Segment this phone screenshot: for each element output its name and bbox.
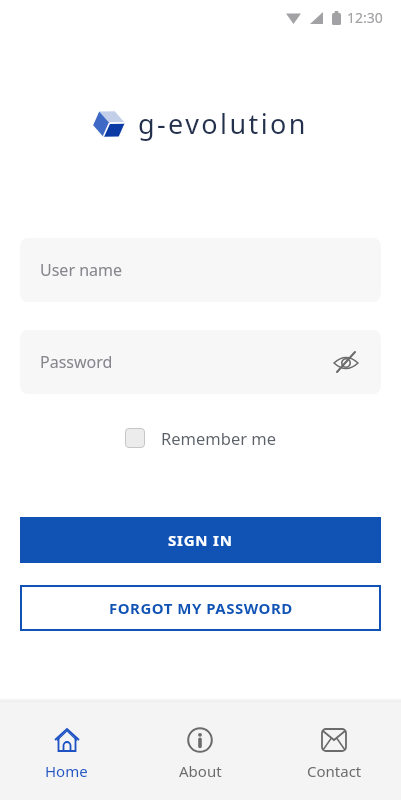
staticText: Contact	[307, 761, 362, 781]
staticText: About	[179, 761, 222, 781]
staticText: Password	[40, 351, 113, 373]
button[interactable]: FORGOT MY PASSWORD	[20, 585, 381, 631]
button[interactable]: Contact	[267, 702, 401, 800]
staticText: Remember me	[161, 427, 277, 449]
button[interactable]: SIGN IN	[20, 517, 381, 563]
staticText: Home	[45, 761, 88, 781]
staticText: 12:30	[347, 8, 383, 27]
button[interactable]: Home	[0, 702, 133, 800]
button[interactable]: Remember me	[125, 427, 277, 449]
button[interactable]: User name	[20, 238, 381, 302]
staticText: FORGOT MY PASSWORD	[109, 598, 293, 618]
staticText: User name	[40, 259, 123, 281]
button[interactable]: About	[133, 702, 267, 800]
staticText: SIGN IN	[168, 530, 233, 550]
button[interactable]: Password	[20, 330, 381, 394]
staticText: g-evolution	[138, 105, 308, 142]
